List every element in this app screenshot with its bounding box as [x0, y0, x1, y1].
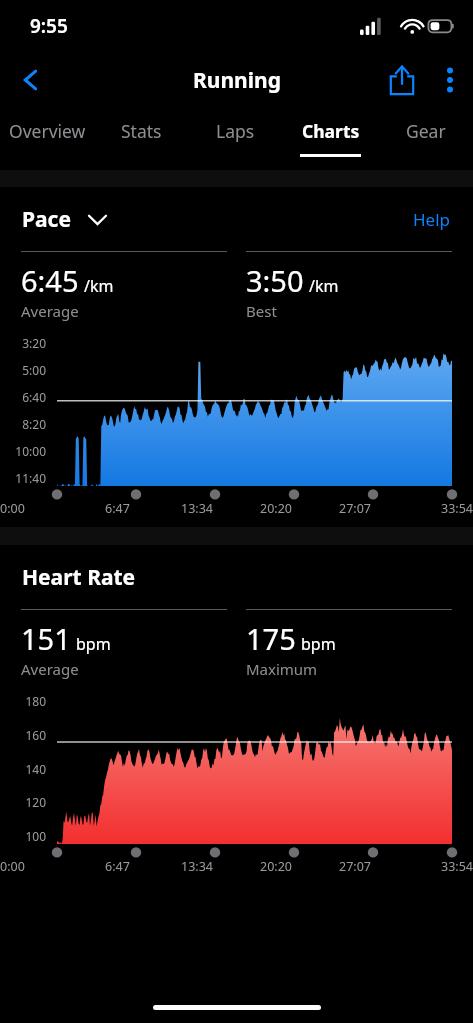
- staticText: Average: [21, 659, 79, 679]
- button[interactable]: Pace: [22, 205, 106, 234]
- staticText: 5:00: [22, 362, 46, 378]
- staticText: 13:34: [181, 858, 213, 875]
- staticText: 6:47: [105, 858, 130, 875]
- staticText: 6:47: [105, 500, 130, 517]
- staticText: 100: [25, 828, 46, 844]
- button[interactable]: Gear: [378, 108, 473, 170]
- staticText: bpm: [301, 633, 336, 655]
- staticText: Running: [193, 66, 281, 95]
- staticText: Maximum: [246, 659, 318, 679]
- staticText: 120: [25, 794, 46, 810]
- staticText: Overview: [9, 119, 86, 143]
- button[interactable]: Share: [377, 55, 427, 105]
- staticText: 33:54: [441, 858, 473, 875]
- staticText: 6:45: [21, 261, 79, 300]
- staticText: 6:40: [22, 389, 46, 405]
- button[interactable]: Overview: [0, 108, 94, 170]
- staticText: 0:00: [0, 500, 25, 517]
- staticText: 27:07: [339, 858, 371, 875]
- staticText: 20:20: [260, 500, 292, 517]
- staticText: 151: [21, 619, 71, 658]
- staticText: Best: [246, 301, 277, 321]
- staticText: Stats: [121, 119, 162, 143]
- staticText: 3:50: [246, 261, 304, 300]
- button[interactable]: Help: [413, 208, 451, 231]
- staticText: 9:55: [30, 13, 68, 39]
- staticText: Heart Rate: [22, 563, 136, 592]
- staticText: 10:00: [15, 443, 46, 459]
- staticText: 20:20: [260, 858, 292, 875]
- staticText: Gear: [406, 119, 446, 143]
- staticText: Average: [21, 301, 79, 321]
- staticText: 33:54: [441, 500, 473, 517]
- staticText: 3:20: [22, 335, 46, 351]
- staticText: 140: [25, 761, 46, 777]
- button[interactable]: Stats: [94, 108, 188, 170]
- button[interactable]: Laps: [188, 108, 283, 170]
- button[interactable]: Charts: [283, 108, 378, 170]
- staticText: 11:40: [15, 470, 46, 486]
- staticText: 175: [246, 619, 296, 658]
- staticText: 180: [25, 693, 46, 709]
- staticText: 13:34: [181, 500, 213, 517]
- staticText: 8:20: [22, 416, 46, 432]
- button[interactable]: More options: [427, 57, 473, 103]
- staticText: 0:00: [0, 858, 25, 875]
- staticText: /km: [84, 275, 114, 297]
- staticText: 160: [25, 727, 46, 743]
- staticText: 27:07: [339, 500, 371, 517]
- staticText: Laps: [216, 119, 255, 143]
- staticText: /km: [309, 275, 339, 297]
- staticText: Help: [413, 208, 451, 231]
- staticText: Pace: [22, 205, 71, 234]
- button[interactable]: Back: [0, 52, 62, 108]
- staticText: bpm: [76, 633, 111, 655]
- staticText: Charts: [302, 119, 360, 143]
